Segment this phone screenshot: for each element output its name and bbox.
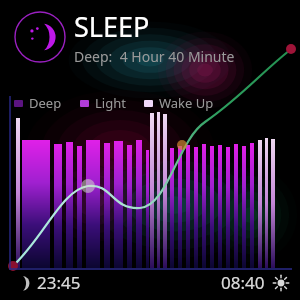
button[interactable]: Deep [14,94,214,112]
other: Wake time [272,274,290,292]
staticText: 23:45 [37,271,81,294]
button[interactable]: Wake Up [144,94,214,112]
button[interactable]: Light [80,94,126,112]
button[interactable]: Sleep [14,8,235,66]
button[interactable]: Bed time [12,271,81,294]
staticText: Light [95,94,126,112]
other: Sleep [14,11,66,63]
staticText: 08:40 [221,271,265,294]
other: Bed time [12,274,30,292]
staticText: Wake Up [159,94,214,112]
staticText: Deep: 4 Hour 40 Minute [74,47,235,66]
button[interactable]: Deep [14,94,62,112]
staticText: SLEEP [74,8,150,45]
staticText: Deep [29,94,62,112]
button[interactable]: 08:40 [221,271,290,294]
